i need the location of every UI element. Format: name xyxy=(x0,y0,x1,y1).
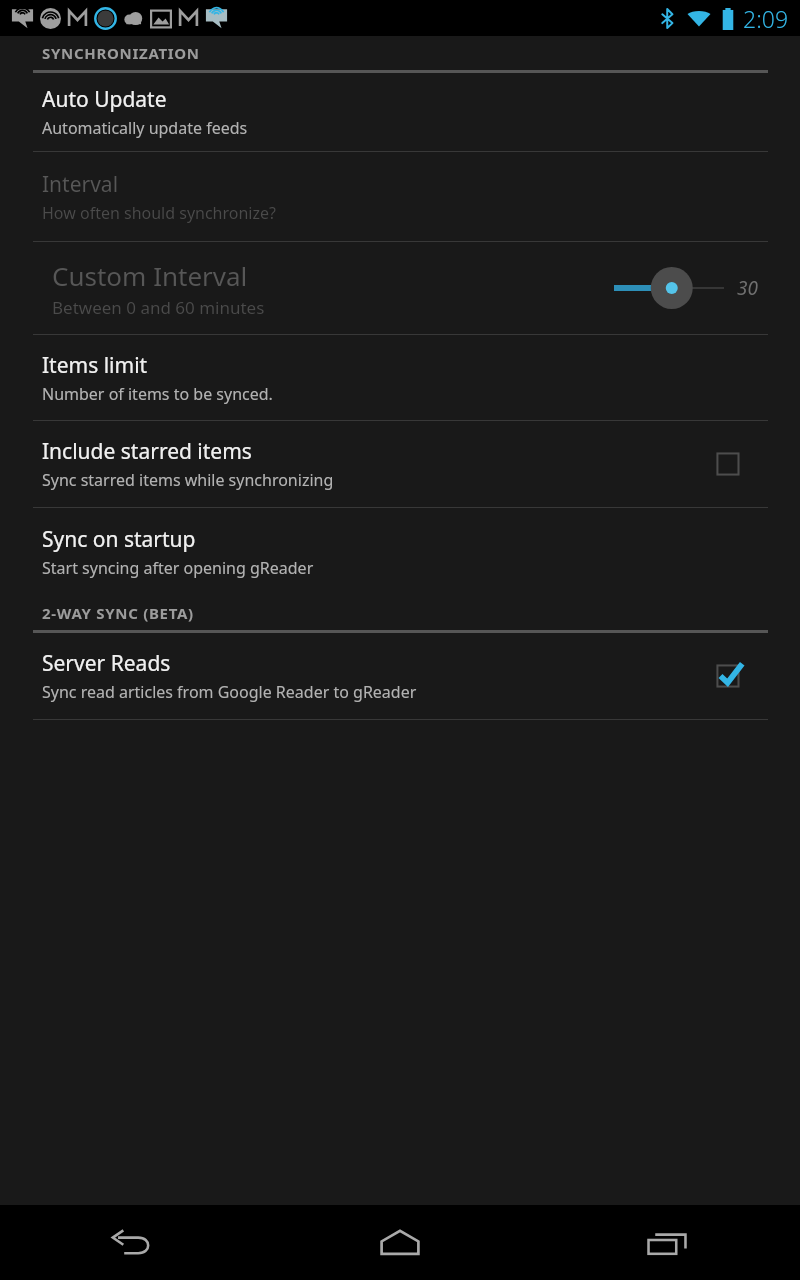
staticText: Automatically update feeds xyxy=(42,117,248,139)
staticText: Sync on startup xyxy=(42,525,196,554)
button[interactable]: Auto Update xyxy=(0,73,800,151)
button[interactable]: Custom Interval xyxy=(0,242,800,334)
staticText: 30 xyxy=(737,275,758,301)
staticText: SYNCHRONIZATION xyxy=(42,43,200,63)
staticText: Interval xyxy=(42,170,119,199)
button[interactable]: Back xyxy=(0,1205,266,1280)
button[interactable]: Custom interval slider xyxy=(607,258,800,318)
staticText: Custom Interval xyxy=(52,258,248,293)
button[interactable]: Home xyxy=(266,1205,533,1280)
button[interactable]: Server Reads xyxy=(0,633,800,719)
button[interactable]: Unchecked xyxy=(710,444,750,484)
staticText: Auto Update xyxy=(42,85,167,114)
staticText: Start syncing after opening gReader xyxy=(42,557,314,579)
staticText: 2-WAY SYNC (BETA) xyxy=(42,603,194,623)
staticText: Between 0 and 60 minutes xyxy=(52,296,265,319)
button[interactable]: Recent apps xyxy=(533,1205,800,1280)
button[interactable]: Sync on startup xyxy=(0,508,800,596)
button[interactable]: Include starred items xyxy=(0,421,800,507)
staticText: Number of items to be synced. xyxy=(42,383,273,405)
button[interactable]: Items limit xyxy=(0,335,800,420)
staticText: 2:09 xyxy=(743,3,789,34)
staticText: Sync read articles from Google Reader to… xyxy=(42,681,417,703)
staticText: Server Reads xyxy=(42,649,171,678)
staticText: Sync starred items while synchronizing xyxy=(42,469,334,491)
button[interactable]: Checked xyxy=(710,656,750,696)
button[interactable]: Interval xyxy=(0,152,800,241)
staticText: How often should synchronize? xyxy=(42,202,276,224)
staticText: Items limit xyxy=(42,351,148,380)
staticText: Include starred items xyxy=(42,437,252,466)
